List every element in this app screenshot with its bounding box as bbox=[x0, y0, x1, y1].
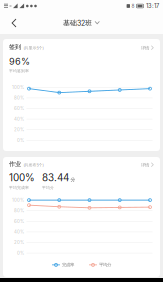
staticText: 0% bbox=[17, 138, 24, 143]
staticText: 分 bbox=[70, 177, 75, 183]
button[interactable]: Back bbox=[5, 12, 23, 34]
staticText: 详情 bbox=[141, 45, 149, 51]
staticText: 20% bbox=[14, 240, 24, 245]
staticText: 40% bbox=[14, 229, 24, 235]
staticText: 40% bbox=[14, 116, 24, 122]
staticText: 详情 bbox=[141, 162, 149, 168]
staticText: 96% bbox=[9, 56, 30, 67]
staticText: 平均分 bbox=[99, 262, 111, 268]
staticText: 20% bbox=[14, 127, 24, 132]
staticText: 平均分 bbox=[42, 185, 54, 190]
staticText: 8 bbox=[131, 3, 134, 9]
staticText: 100% bbox=[12, 85, 24, 90]
staticText: 作业 bbox=[9, 160, 21, 168]
staticText: 0% bbox=[17, 250, 24, 256]
staticText: (共发布5个) bbox=[23, 162, 43, 167]
staticText: 完成率 bbox=[62, 262, 74, 268]
staticText: 100% bbox=[12, 197, 24, 203]
staticText: 基础32班 bbox=[63, 19, 92, 27]
button[interactable]: 详情 bbox=[141, 45, 154, 51]
staticText: 13:17 bbox=[146, 2, 159, 9]
staticText: 100% bbox=[9, 172, 35, 184]
staticText: 平均签到率 bbox=[9, 68, 29, 73]
staticText: 平均完成率 bbox=[9, 185, 29, 190]
button[interactable]: 详情 bbox=[141, 162, 154, 168]
staticText: 签到 bbox=[9, 43, 21, 51]
staticText: 60% bbox=[14, 106, 24, 111]
staticText: (共显示5个) bbox=[23, 45, 43, 50]
staticText: 83.44 bbox=[42, 172, 69, 184]
staticText: 80% bbox=[14, 208, 24, 213]
button[interactable]: 基础32班 bbox=[63, 12, 100, 34]
staticText: 60% bbox=[14, 219, 24, 224]
staticText: 80% bbox=[14, 95, 24, 101]
